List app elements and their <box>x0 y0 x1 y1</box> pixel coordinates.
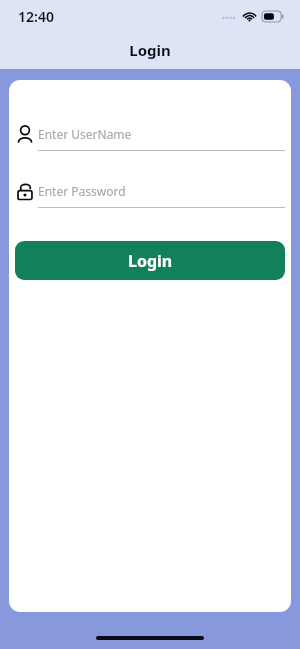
staticText: Enter UserName <box>38 126 132 142</box>
other: User name <box>16 125 34 143</box>
button[interactable]: Enter UserName <box>38 124 285 144</box>
staticText: Login <box>128 250 173 272</box>
button[interactable]: Login <box>15 241 285 280</box>
button[interactable]: Enter Password <box>38 181 285 201</box>
other: Password <box>17 183 34 200</box>
staticText: Enter Password <box>38 183 126 199</box>
staticText: Login <box>129 40 171 60</box>
staticText: 12:40 <box>18 7 54 26</box>
